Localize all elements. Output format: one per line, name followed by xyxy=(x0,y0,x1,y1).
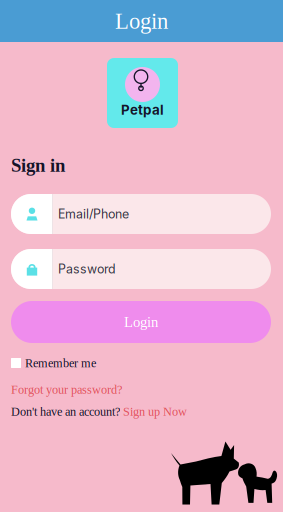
button[interactable]: Sign up Now xyxy=(123,405,187,418)
button[interactable]: Email/Phone xyxy=(11,194,271,234)
staticText: Email/Phone xyxy=(58,206,129,221)
button[interactable]: Login xyxy=(11,301,271,343)
staticText: Password xyxy=(58,261,116,276)
staticText: Login xyxy=(124,314,158,330)
staticText: Login xyxy=(115,8,168,33)
staticText: Petpal xyxy=(121,102,164,118)
staticText: Sign in xyxy=(11,155,65,176)
button[interactable]: Password xyxy=(11,249,271,289)
button[interactable]: Remember me xyxy=(11,356,121,370)
staticText: Forgot your password? xyxy=(11,383,122,396)
staticText: Sign up Now xyxy=(123,405,187,418)
staticText: Remember me xyxy=(25,356,96,370)
staticText: Don't have an account? xyxy=(11,405,123,418)
button[interactable]: Forgot your password? xyxy=(11,383,131,396)
